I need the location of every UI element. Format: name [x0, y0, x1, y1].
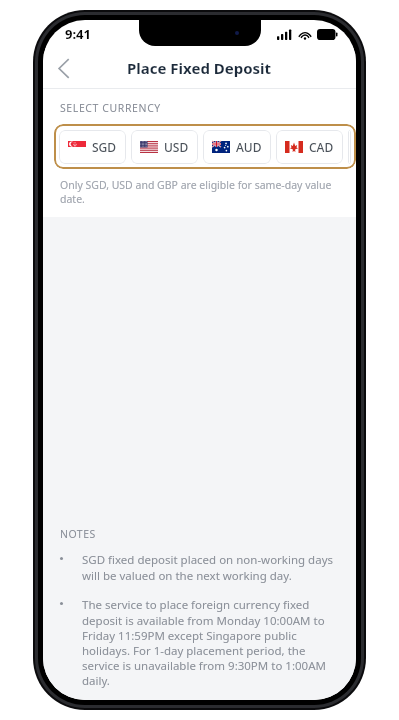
button[interactable]: AUD	[203, 130, 271, 164]
button[interactable]: CAD	[276, 130, 343, 164]
staticText: CAD	[309, 139, 334, 155]
staticText: 9:41	[65, 25, 91, 43]
button[interactable]: USD	[131, 130, 198, 164]
staticText: SGD	[92, 139, 117, 155]
staticText: NOTES	[60, 527, 96, 541]
button[interactable]: CHF	[348, 130, 351, 164]
staticText: USD	[164, 139, 189, 155]
staticText: SELECT CURRENCY	[60, 101, 161, 115]
button[interactable]: Back	[43, 48, 83, 88]
button[interactable]: SGD	[59, 130, 126, 164]
staticText: Only SGD, USD and GBP are eligible for s…	[60, 178, 344, 206]
staticText: AUD	[236, 139, 262, 155]
staticText: SGD fixed deposit placed on non-working …	[82, 552, 342, 583]
staticText: The service to place foreign currency fi…	[82, 597, 342, 688]
staticText: Place Fixed Deposit	[127, 58, 272, 78]
